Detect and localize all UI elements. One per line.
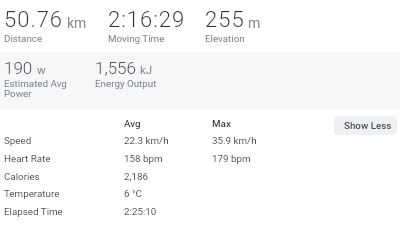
staticText: Elapsed Time <box>4 206 63 217</box>
staticText: Energy Output <box>95 78 157 89</box>
staticText: 2:25:10 <box>124 206 157 217</box>
staticText: Calories <box>4 171 40 182</box>
staticText: Distance <box>4 33 43 44</box>
staticText: Max <box>212 118 231 129</box>
staticText: km <box>67 15 87 31</box>
staticText: m <box>248 15 261 31</box>
staticText: Elevation <box>205 33 245 44</box>
staticText: 2,186 <box>124 171 148 182</box>
staticText: Show Less <box>344 120 392 131</box>
staticText: 6 °C <box>124 188 142 199</box>
staticText: 1,556 <box>95 58 136 78</box>
staticText: 158 bpm <box>124 153 163 164</box>
staticText: 50.76 <box>4 7 64 33</box>
staticText: 190 <box>4 58 33 78</box>
staticText: kJ <box>140 63 153 76</box>
staticText: Heart Rate <box>4 153 51 164</box>
staticText: Temperature <box>4 188 60 199</box>
staticText: Moving Time <box>108 33 165 44</box>
staticText: 179 bpm <box>212 153 251 164</box>
staticText: 35.9 km/h <box>212 135 257 146</box>
staticText: 255 <box>205 7 245 33</box>
staticText: Estimated Avg Power <box>4 78 67 100</box>
staticText: w <box>37 63 46 76</box>
staticText: 2:16:29 <box>108 7 186 33</box>
staticText: 22.3 km/h <box>124 135 169 146</box>
staticText: Speed <box>4 135 32 146</box>
button[interactable]: Show Less <box>334 116 397 135</box>
staticText: Avg <box>124 118 141 129</box>
